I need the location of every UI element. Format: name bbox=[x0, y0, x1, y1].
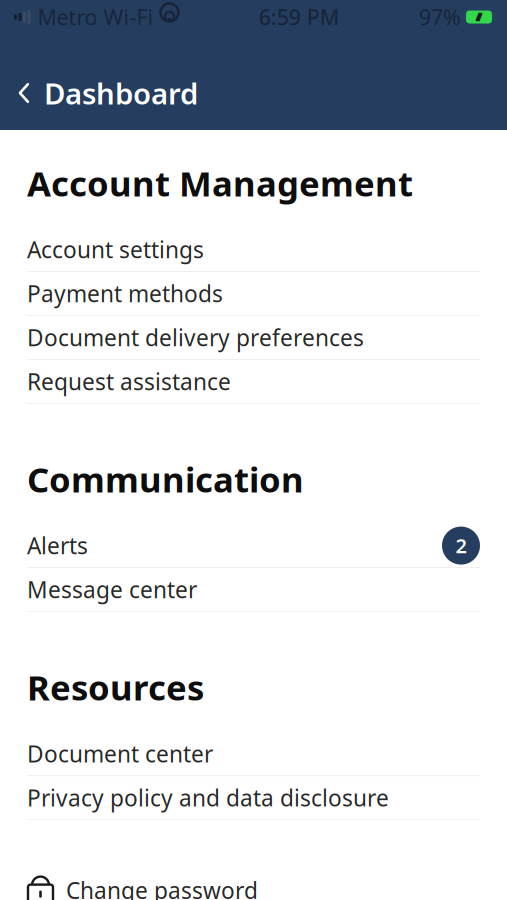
button[interactable]: Change password bbox=[0, 868, 507, 900]
staticText: 6:59 PM bbox=[259, 3, 340, 31]
staticText: Privacy policy and data disclosure bbox=[27, 783, 389, 813]
staticText: Alerts bbox=[27, 530, 88, 561]
button[interactable]: Message center bbox=[0, 568, 507, 612]
staticText: Dashboard bbox=[44, 73, 198, 112]
staticText: 2 bbox=[455, 532, 466, 559]
button[interactable]: Account settings bbox=[0, 228, 507, 272]
staticText: Change password bbox=[66, 875, 258, 900]
staticText: Communication bbox=[27, 456, 304, 502]
button[interactable]: Payment methods bbox=[0, 272, 507, 316]
staticText: Message center bbox=[27, 574, 197, 605]
staticText: Account settings bbox=[27, 234, 204, 265]
staticText: Account Management bbox=[27, 160, 413, 206]
staticText: Request assistance bbox=[27, 366, 231, 397]
button[interactable]: Document delivery preferences bbox=[0, 316, 507, 360]
button[interactable]: Privacy policy and data disclosure bbox=[0, 776, 507, 820]
button[interactable]: Document center bbox=[0, 732, 507, 776]
staticText: 97% bbox=[419, 3, 461, 31]
staticText: Payment methods bbox=[27, 278, 223, 309]
staticText: Document center bbox=[27, 739, 213, 769]
staticText: Resources bbox=[27, 664, 204, 710]
button[interactable]: Alerts bbox=[0, 524, 507, 568]
staticText: Document delivery preferences bbox=[27, 322, 364, 353]
staticText: Metro Wi-Fi bbox=[37, 3, 153, 31]
button[interactable]: Dashboard bbox=[0, 70, 507, 116]
button[interactable]: Request assistance bbox=[0, 360, 507, 404]
